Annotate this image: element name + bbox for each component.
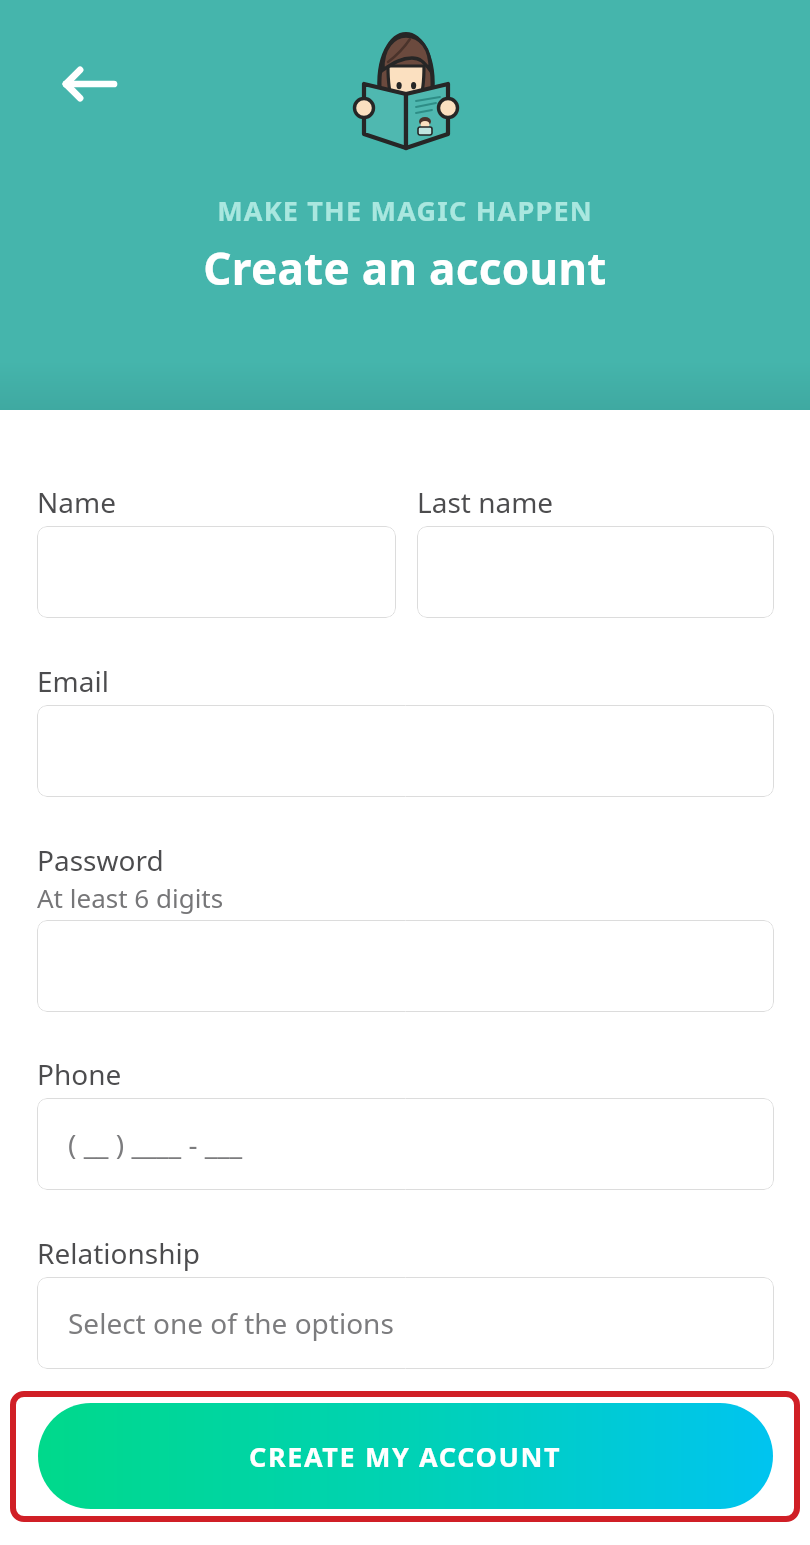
staticText: CREATE MY ACCOUNT [249, 1438, 562, 1475]
staticText: MAKE THE MAGIC HAPPEN [217, 192, 593, 229]
button[interactable] [37, 920, 774, 1012]
button[interactable] [417, 526, 774, 618]
button[interactable]: Select one of the options [37, 1277, 774, 1369]
staticText: ( __ ) ____ - ___ [68, 1125, 243, 1163]
button[interactable] [37, 705, 774, 797]
staticText: Select one of the options [68, 1304, 394, 1342]
staticText: Last name [417, 483, 554, 521]
staticText: Password [37, 841, 164, 879]
staticText: Phone [37, 1055, 122, 1093]
button[interactable] [37, 526, 396, 618]
staticText: At least 6 digits [37, 880, 224, 915]
button[interactable]: CREATE MY ACCOUNT [38, 1403, 773, 1509]
button[interactable]: ( __ ) ____ - ___ [37, 1098, 774, 1190]
staticText: Email [37, 662, 109, 700]
staticText: Create an account [203, 238, 607, 298]
staticText: Relationship [37, 1234, 200, 1272]
staticText: Name [37, 483, 116, 521]
button[interactable]: Back [48, 52, 120, 116]
